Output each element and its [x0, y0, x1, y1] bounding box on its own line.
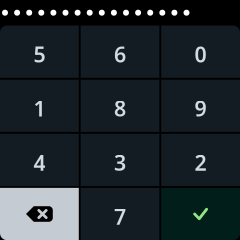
staticText: 8	[114, 94, 126, 122]
button[interactable]: 9	[161, 80, 240, 132]
staticText: 0	[195, 40, 207, 68]
button[interactable]: 0	[161, 26, 240, 78]
button[interactable]: Delete	[0, 188, 79, 240]
button[interactable]: 8	[81, 80, 159, 132]
button[interactable]: 1	[0, 80, 79, 132]
staticText: 5	[33, 40, 45, 68]
staticText: 4	[33, 148, 45, 176]
button[interactable]: 4	[0, 134, 79, 186]
button[interactable]: 7	[81, 188, 159, 240]
button[interactable]: Confirm	[161, 188, 240, 240]
button[interactable]: 5	[0, 26, 79, 78]
button[interactable]: 2	[161, 134, 240, 186]
button[interactable]: 3	[81, 134, 159, 186]
staticText: 2	[195, 148, 207, 176]
staticText: 1	[33, 94, 45, 122]
button[interactable]: 6	[81, 26, 159, 78]
staticText: 6	[114, 40, 126, 68]
staticText: 9	[195, 94, 207, 122]
staticText: 7	[114, 202, 126, 231]
staticText: 3	[114, 148, 126, 176]
